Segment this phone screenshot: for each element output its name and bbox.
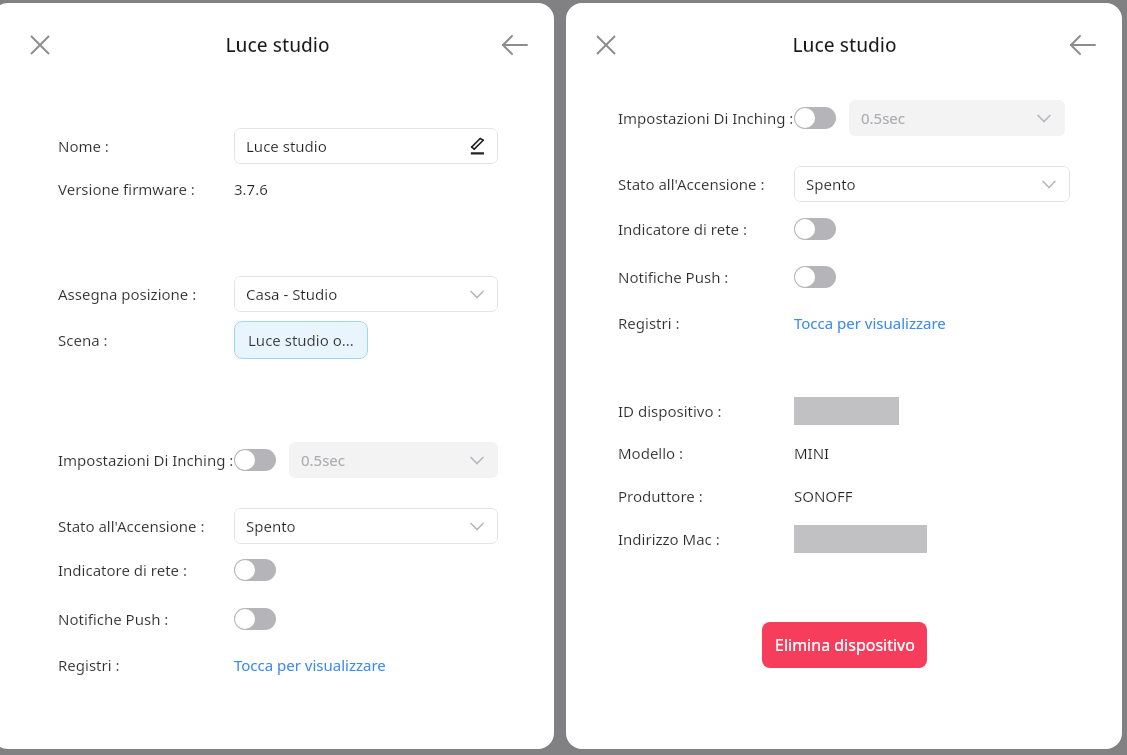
staticText: Stato all'Accensione : [58, 516, 205, 536]
staticText: Elimina dispositivo [775, 634, 915, 656]
button[interactable]: 0.5sec [289, 442, 498, 478]
button[interactable]: Tocca per visualizzare [794, 313, 946, 333]
button[interactable]: Casa - Studio [234, 276, 498, 312]
button[interactable]: Toggle switch, off [794, 218, 836, 240]
staticText: Spento [806, 174, 1040, 194]
button[interactable]: Back [496, 26, 534, 64]
staticText: Impostazioni Di Inching : [58, 450, 234, 470]
staticText: SONOFF [794, 486, 853, 506]
staticText: Spento [246, 516, 468, 536]
staticText: 0.5sec [861, 108, 1035, 128]
button[interactable]: Close [22, 27, 58, 63]
staticText: Impostazioni Di Inching : [618, 108, 794, 128]
button[interactable]: Spento [794, 166, 1070, 202]
button[interactable]: Elimina dispositivo [762, 622, 927, 668]
staticText: Tocca per visualizzare [234, 655, 386, 675]
button[interactable]: Close [588, 27, 624, 63]
staticText: MINI [794, 443, 830, 463]
staticText: Luce studio o... [248, 330, 354, 350]
staticText: Modello : [618, 443, 684, 463]
button[interactable]: 0.5sec [849, 100, 1065, 136]
staticText: Indicatore di rete : [618, 219, 747, 239]
button[interactable]: Spento [234, 508, 498, 544]
staticText: Nome : [58, 136, 109, 156]
staticText: Scena : [58, 330, 108, 350]
button[interactable]: Luce studio o... [234, 321, 368, 359]
staticText: Luce studio [792, 32, 897, 58]
staticText: Stato all'Accensione : [618, 174, 765, 194]
staticText: 3.7.6 [234, 179, 268, 199]
staticText: Notifiche Push : [58, 609, 169, 629]
staticText: Indirizzo Mac : [618, 529, 720, 549]
staticText: Produttore : [618, 486, 703, 506]
staticText: Casa - Studio [246, 284, 468, 304]
staticText: Notifiche Push : [618, 267, 729, 287]
other: Edit name [468, 137, 487, 156]
staticText: Indicatore di rete : [58, 560, 187, 580]
button[interactable]: Toggle switch, off [794, 107, 836, 129]
staticText: Registri : [618, 313, 680, 333]
staticText: ID dispositivo : [618, 401, 722, 421]
button[interactable]: Back [1064, 26, 1102, 64]
staticText: Luce studio [246, 136, 468, 156]
staticText: 0.5sec [301, 450, 468, 470]
button[interactable]: Toggle switch, off [234, 608, 276, 630]
button[interactable]: Toggle switch, off [234, 559, 276, 581]
button[interactable]: Tocca per visualizzare [234, 655, 386, 675]
button[interactable]: Toggle switch, off [794, 266, 836, 288]
staticText: Versione firmware : [58, 179, 195, 199]
staticText: Assegna posizione : [58, 284, 197, 304]
button[interactable]: Luce studio [234, 128, 498, 164]
staticText: Tocca per visualizzare [794, 313, 946, 333]
staticText: Registri : [58, 655, 120, 675]
button[interactable]: Toggle switch, off [234, 449, 276, 471]
staticText: Luce studio [225, 32, 330, 58]
